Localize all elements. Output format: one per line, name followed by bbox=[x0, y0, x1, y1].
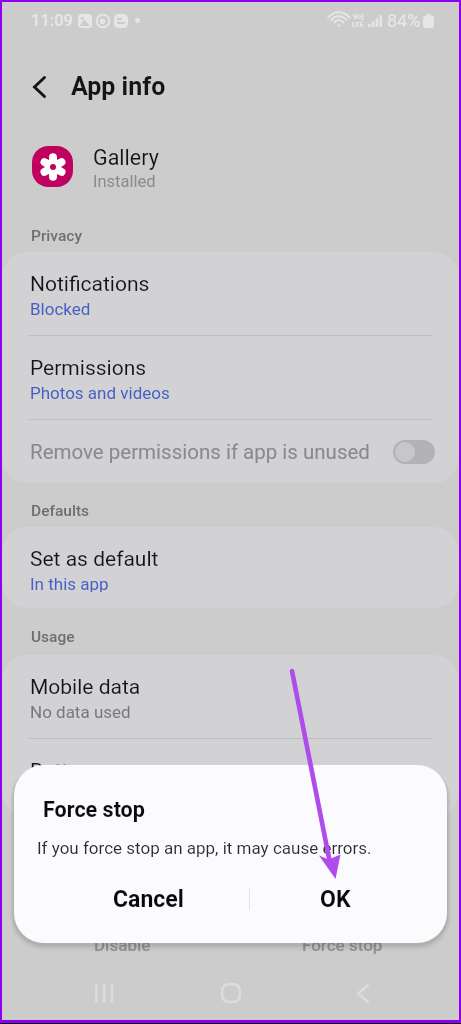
button[interactable]: Home bbox=[208, 970, 254, 1016]
staticText: Disable bbox=[94, 935, 151, 955]
staticText: Permissions bbox=[30, 356, 147, 381]
staticText: 11:09 bbox=[31, 11, 73, 30]
staticText: Force stop bbox=[302, 935, 383, 955]
staticText: OK bbox=[320, 886, 351, 913]
staticText: Force stop bbox=[43, 797, 145, 822]
button[interactable]: Notifications bbox=[2, 252, 459, 335]
staticText: Usage bbox=[31, 628, 75, 646]
button[interactable]: OK bbox=[262, 876, 408, 922]
button[interactable]: Permissions bbox=[2, 336, 459, 419]
staticText: Gallery bbox=[93, 145, 159, 170]
button[interactable]: Recent apps bbox=[81, 970, 127, 1016]
staticText: Mobile data bbox=[30, 675, 141, 700]
button[interactable]: Force stop bbox=[280, 929, 404, 961]
staticText: Battery bbox=[30, 759, 97, 784]
staticText: Photos and videos bbox=[30, 383, 170, 403]
staticText: Cancel bbox=[113, 886, 184, 913]
staticText: LTE bbox=[352, 21, 364, 29]
button[interactable]: Cancel bbox=[75, 876, 221, 922]
staticText: Blocked bbox=[30, 299, 91, 319]
button[interactable]: Remove permissions if app is unused bbox=[2, 420, 459, 483]
staticText: Unknown bbox=[30, 786, 101, 802]
staticText: In this app bbox=[30, 574, 109, 592]
staticText: Installed bbox=[93, 172, 156, 191]
button[interactable]: Mobile data bbox=[2, 655, 459, 738]
staticText: Remove permissions if app is unused bbox=[30, 440, 393, 464]
staticText: Privacy bbox=[31, 227, 82, 245]
staticText: Defaults bbox=[31, 502, 90, 520]
button[interactable]: Set as default bbox=[2, 527, 459, 608]
staticText: App info bbox=[71, 72, 166, 101]
staticText: 84% bbox=[387, 10, 421, 31]
button[interactable]: Navigate up bbox=[18, 66, 60, 108]
staticText: No data used bbox=[30, 702, 131, 722]
staticText: If you force stop an app, it may cause e… bbox=[37, 838, 372, 858]
button[interactable]: Battery bbox=[2, 739, 459, 818]
staticText: Notifications bbox=[30, 272, 150, 297]
button[interactable]: Disable bbox=[60, 929, 184, 961]
staticText: Set as default bbox=[30, 547, 159, 572]
staticText: Vo) bbox=[353, 13, 364, 21]
